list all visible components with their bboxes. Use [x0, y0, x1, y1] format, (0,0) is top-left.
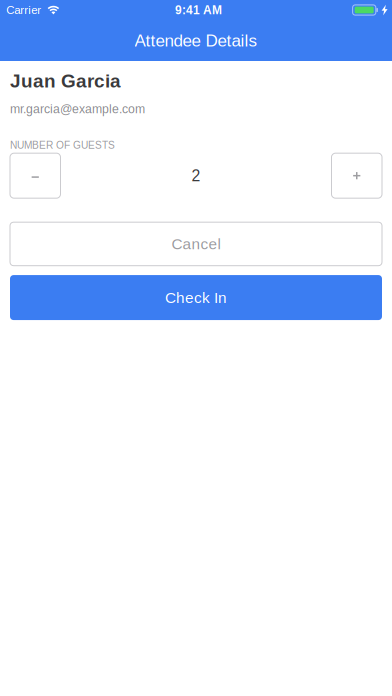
staticText: mr.garcia@example.com	[10, 102, 145, 116]
staticText: 2	[191, 167, 200, 184]
staticText: Carrier	[6, 4, 41, 16]
staticText: 9:41 AM	[175, 3, 222, 17]
button[interactable]: Remove guest	[10, 153, 60, 198]
staticText: Cancel	[171, 235, 220, 252]
button[interactable]: Cancel	[10, 222, 382, 266]
button[interactable]: Check In	[10, 275, 382, 320]
staticText: Attendee Details	[134, 31, 257, 50]
staticText: Juan Garcia	[10, 70, 121, 91]
button[interactable]: Add guest	[331, 153, 382, 198]
staticText: NUMBER OF GUESTS	[10, 139, 115, 151]
staticText: Check In	[165, 289, 227, 306]
